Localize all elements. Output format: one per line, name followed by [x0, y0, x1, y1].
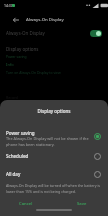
button[interactable]: Display options: [0, 46, 108, 58]
button[interactable]: Save: [64, 199, 100, 209]
staticText: Info: [6, 62, 14, 67]
button[interactable]: Power saving: [0, 126, 108, 150]
button[interactable]: Always-On Display: [0, 26, 108, 40]
button[interactable]: Back: [10, 14, 22, 26]
staticText: Cancel: [19, 201, 33, 207]
staticText: Display options: [6, 46, 39, 52]
button[interactable]: All day: [0, 166, 108, 182]
staticText: Power saving: [6, 130, 35, 136]
staticText: Turn on Always-On Display to view: [6, 70, 61, 75]
staticText: All day: [6, 171, 21, 177]
staticText: Always-On Display: [26, 16, 64, 22]
staticText: Display options: [0, 108, 108, 114]
staticText: Always-On Display will be turned off whe…: [6, 183, 101, 188]
staticText: Power saving: [6, 54, 27, 58]
button[interactable]: Cancel: [8, 199, 44, 209]
staticText: Always-On Display: [6, 30, 45, 36]
staticText: lower than 15% and is not being charged.: [6, 189, 76, 194]
staticText: Save: [77, 201, 87, 207]
staticText: Record: [6, 95, 18, 100]
staticText: The Always-On Display will not be shown …: [6, 136, 89, 147]
button[interactable]: Scheduled: [0, 148, 108, 164]
staticText: Scheduled: [6, 153, 29, 159]
staticText: 14:37: [4, 3, 13, 8]
